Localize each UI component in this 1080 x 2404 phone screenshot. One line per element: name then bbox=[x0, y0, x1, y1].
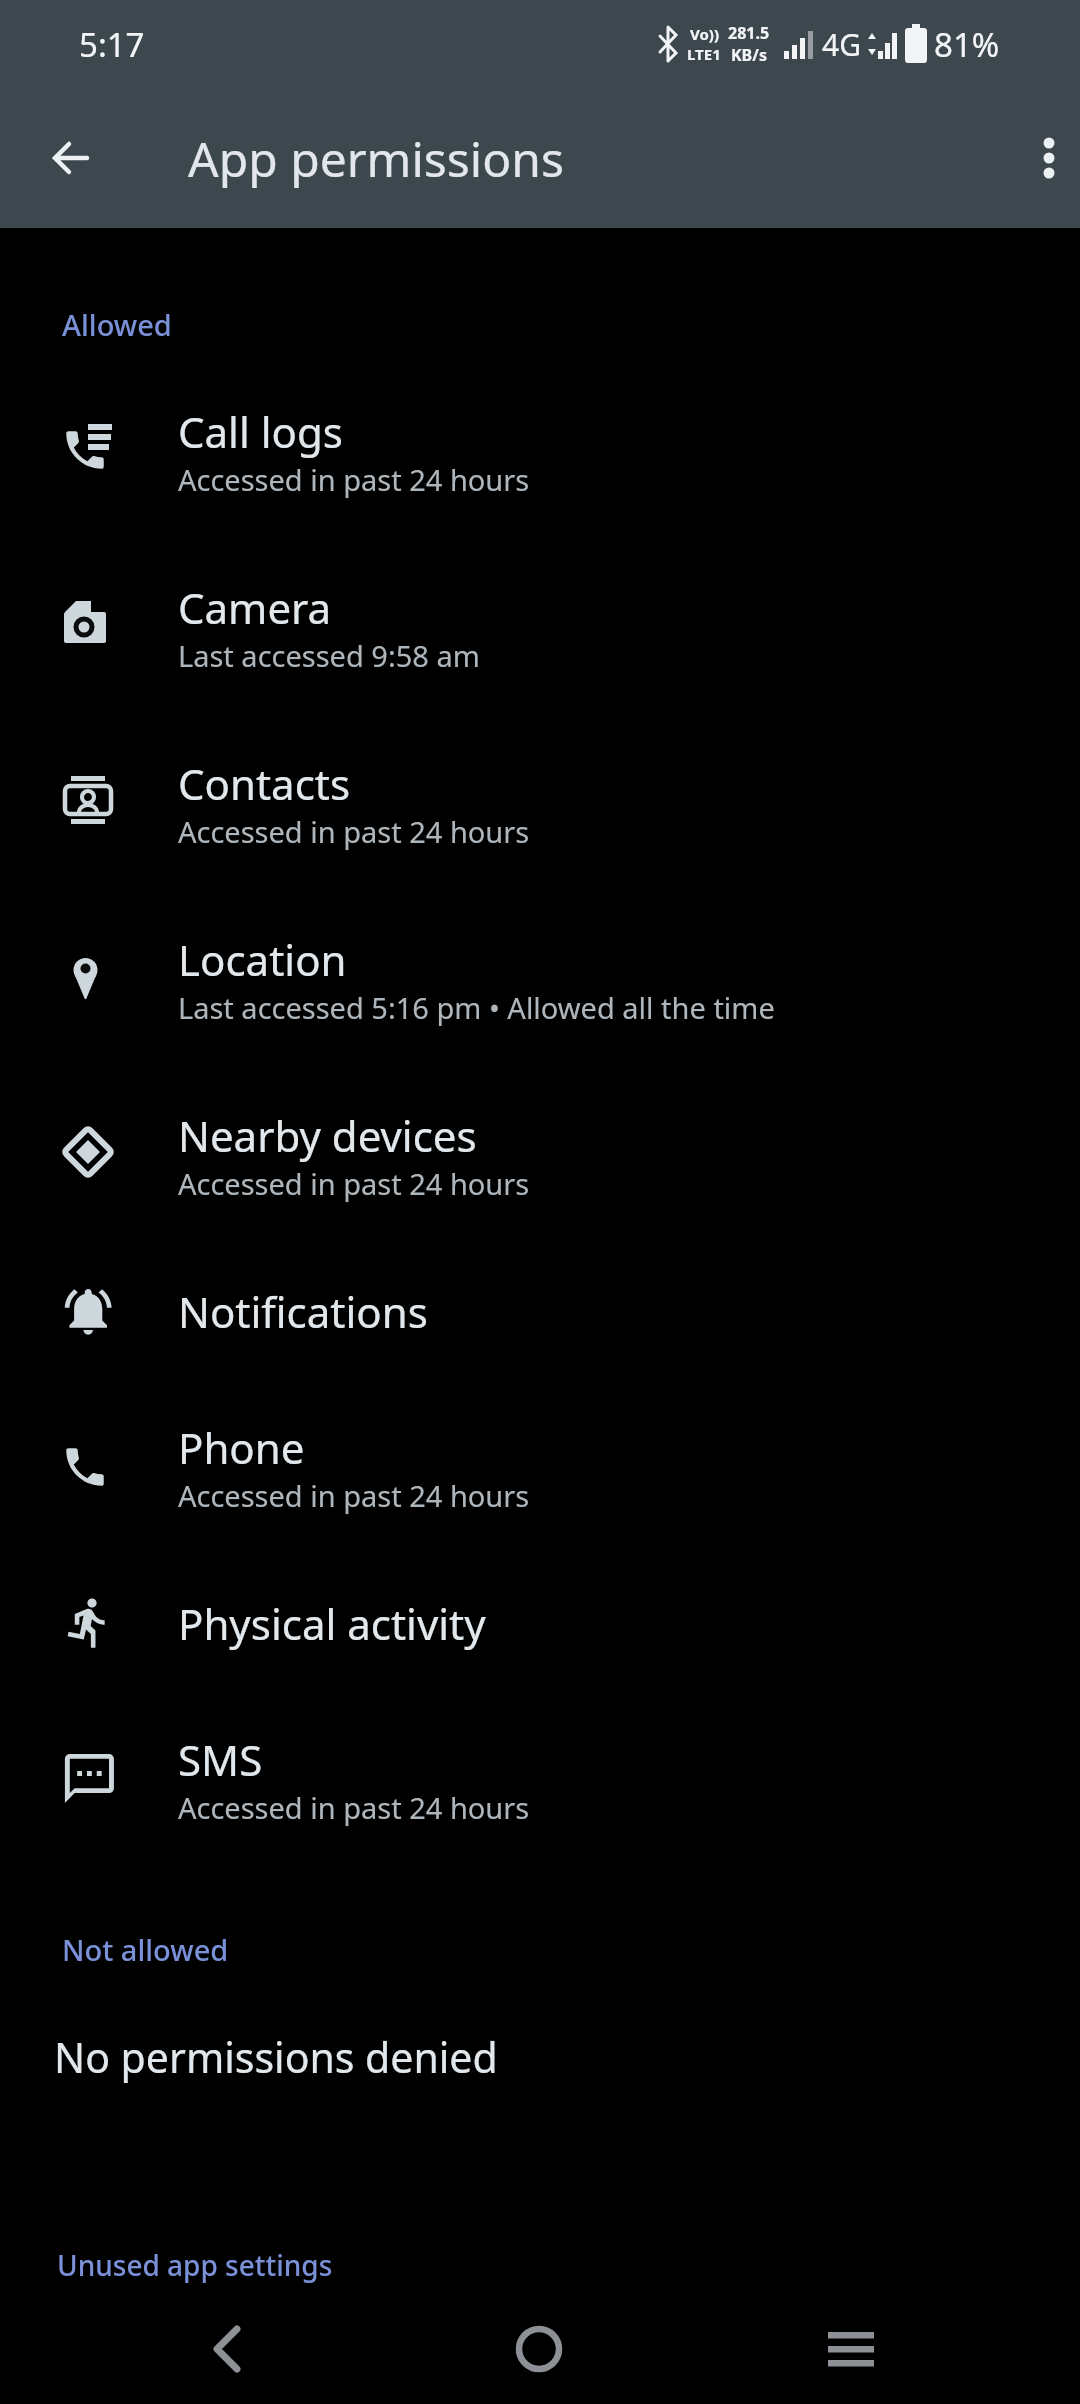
staticText: 81% bbox=[934, 22, 1000, 67]
button[interactable] bbox=[515, 2325, 563, 2373]
staticText: Camera bbox=[178, 579, 332, 636]
button[interactable]: Phone bbox=[0, 1384, 1080, 1560]
staticText: Location bbox=[178, 931, 347, 988]
button[interactable] bbox=[827, 2325, 875, 2373]
button[interactable] bbox=[203, 2325, 251, 2373]
staticText: Not allowed bbox=[62, 1930, 229, 1969]
staticText: KB/s bbox=[731, 44, 767, 66]
button[interactable] bbox=[1025, 134, 1073, 182]
staticText: Accessed in past 24 hours bbox=[178, 1788, 530, 1827]
staticText: Nearby devices bbox=[178, 1107, 477, 1164]
staticText: Last accessed 5:16 pm • Allowed all the … bbox=[178, 988, 775, 1027]
staticText: Vo)) bbox=[690, 24, 719, 44]
button[interactable]: Contacts bbox=[0, 720, 1080, 896]
staticText: Accessed in past 24 hours bbox=[178, 460, 530, 499]
staticText: Physical activity bbox=[178, 1595, 486, 1652]
button[interactable]: Notifications bbox=[0, 1248, 1080, 1384]
staticText: Last accessed 9:58 am bbox=[178, 636, 480, 675]
staticText: 5:17 bbox=[79, 22, 145, 67]
button[interactable]: SMS bbox=[0, 1696, 1080, 1872]
staticText: Accessed in past 24 hours bbox=[178, 1476, 530, 1515]
staticText: Notifications bbox=[178, 1283, 428, 1340]
button[interactable]: Location bbox=[0, 896, 1080, 1072]
staticText: Allowed bbox=[62, 305, 172, 344]
button[interactable]: Physical activity bbox=[0, 1560, 1080, 1696]
button[interactable]: Unused app settings bbox=[57, 2243, 333, 2287]
button[interactable]: Call logs bbox=[0, 368, 1080, 544]
staticText: App permissions bbox=[188, 126, 564, 191]
button[interactable]: Camera bbox=[0, 544, 1080, 720]
staticText: Call logs bbox=[178, 403, 343, 460]
staticText: Unused app settings bbox=[57, 2246, 333, 2284]
staticText: SMS bbox=[178, 1731, 263, 1788]
staticText: Accessed in past 24 hours bbox=[178, 812, 530, 851]
staticText: 4G bbox=[822, 24, 861, 65]
staticText: Contacts bbox=[178, 755, 351, 812]
staticText: Phone bbox=[178, 1419, 305, 1476]
staticText: No permissions denied bbox=[54, 2029, 498, 2085]
staticText: Accessed in past 24 hours bbox=[178, 1164, 530, 1203]
button[interactable] bbox=[46, 134, 94, 182]
staticText: LTE1 bbox=[687, 44, 721, 64]
button[interactable]: Nearby devices bbox=[0, 1072, 1080, 1248]
staticText: 281.5 bbox=[728, 22, 770, 44]
